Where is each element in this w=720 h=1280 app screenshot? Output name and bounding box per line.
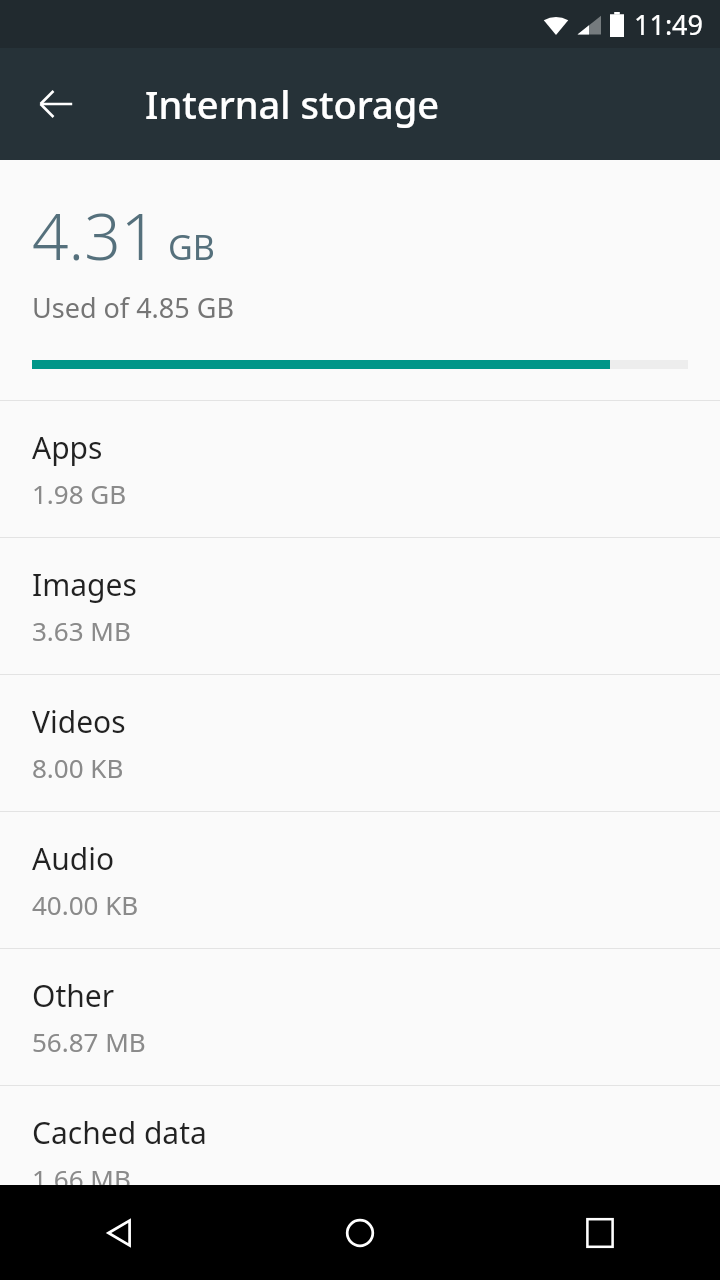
staticText: Internal storage [145,78,440,130]
staticText: 1.98 GB [32,476,127,511]
button[interactable]: Apps [0,401,720,537]
staticText: GB [168,224,215,270]
button[interactable]: Back [0,1185,240,1280]
button[interactable]: Videos [0,675,720,811]
staticText: 4.31 [32,192,158,279]
staticText: Apps [32,427,103,468]
button[interactable]: Navigate up [14,62,98,146]
staticText: 8.00 KB [32,750,124,785]
staticText: 1.66 MB [32,1161,131,1196]
button[interactable]: Home [240,1185,480,1280]
button[interactable]: Audio [0,812,720,948]
staticText: Audio [32,838,115,879]
staticText: Images [32,564,137,605]
staticText: Used of 4.85 GB [32,289,234,326]
staticText: Other [32,975,115,1016]
button[interactable]: Images [0,538,720,674]
staticText: 56.87 MB [32,1024,146,1059]
staticText: 11:49 [634,6,704,43]
button[interactable]: Recent apps [480,1185,720,1280]
staticText: 40.00 KB [32,887,139,922]
staticText: Videos [32,701,126,742]
staticText: Cached data [32,1112,207,1153]
staticText: 3.63 MB [32,613,131,648]
button[interactable]: Other [0,949,720,1085]
button[interactable]: Cached data [0,1086,720,1222]
